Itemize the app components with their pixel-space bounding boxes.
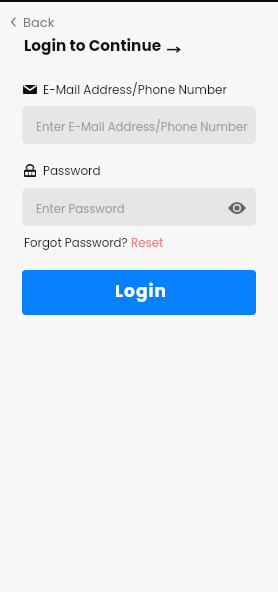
button[interactable] <box>22 270 256 315</box>
staticText: Login <box>115 279 167 303</box>
staticText: Reset <box>131 235 164 252</box>
staticText: Forgot Password? <box>24 235 128 252</box>
button[interactable] <box>22 106 256 144</box>
button[interactable] <box>129 235 164 252</box>
staticText: Back <box>23 13 55 31</box>
staticText: Password <box>43 162 101 179</box>
button[interactable] <box>22 188 256 226</box>
button[interactable]: Show password <box>224 195 250 221</box>
staticText: E-Mail Address/Phone Number <box>43 81 227 98</box>
staticText: Enter Password <box>36 201 125 217</box>
staticText: Login to Continue <box>24 35 162 56</box>
staticText: Enter E-Mail Address/Phone Number <box>36 119 248 135</box>
button[interactable]: Back <box>5 10 63 35</box>
